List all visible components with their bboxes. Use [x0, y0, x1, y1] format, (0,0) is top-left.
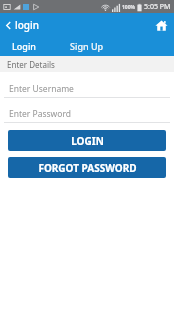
button[interactable]: Sign Up — [60, 37, 116, 55]
staticText: Login — [12, 40, 36, 52]
staticText: FORGOT PASSWORD — [38, 161, 137, 175]
button[interactable]: login — [0, 15, 45, 35]
staticText: Enter Username — [9, 83, 74, 95]
staticText: 100% — [122, 4, 136, 11]
staticText: Enter Password — [9, 108, 72, 120]
button[interactable]: LOGIN — [8, 130, 166, 151]
button[interactable]: Enter Username — [0, 80, 174, 98]
button[interactable]: Home — [148, 15, 174, 35]
staticText: Sign Up — [70, 40, 104, 52]
button[interactable]: Enter Password — [0, 105, 174, 123]
staticText: LOGIN — [71, 134, 104, 148]
staticText: 5:05 PM — [144, 2, 171, 12]
staticText: Enter Details — [7, 59, 55, 70]
button[interactable]: FORGOT PASSWORD — [8, 157, 166, 178]
staticText: login — [15, 18, 39, 32]
button[interactable]: Login — [0, 37, 48, 55]
